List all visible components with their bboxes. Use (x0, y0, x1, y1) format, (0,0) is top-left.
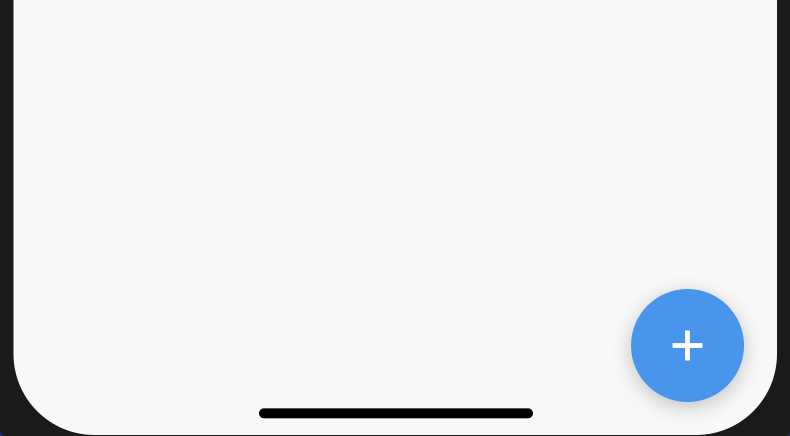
button[interactable]: Add (631, 289, 744, 402)
